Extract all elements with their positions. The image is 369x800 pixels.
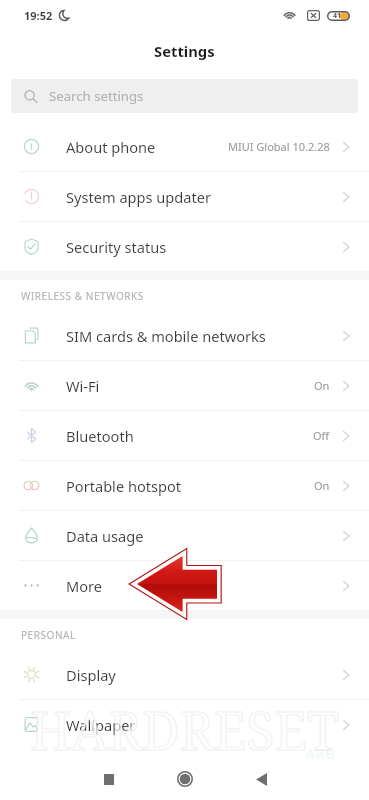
button[interactable]: System apps updater — [0, 172, 369, 221]
staticText: More — [66, 576, 341, 596]
button[interactable]: Wi-Fi — [0, 361, 369, 410]
staticText: Search settings — [49, 87, 144, 105]
button[interactable]: Search settings — [11, 79, 358, 113]
staticText: Bluetooth — [66, 426, 313, 446]
staticText: Settings — [154, 41, 215, 61]
staticText: Wi-Fi — [66, 376, 314, 396]
staticText: About phone — [66, 137, 228, 157]
staticText: On — [314, 378, 330, 393]
staticText: Off — [313, 428, 330, 443]
button[interactable]: Display — [0, 650, 369, 699]
button[interactable]: Back — [243, 754, 279, 800]
button[interactable]: About phone — [0, 122, 369, 171]
staticText: Security status — [66, 237, 341, 257]
button[interactable]: Wallpaper — [0, 700, 369, 749]
staticText: HARDRESET — [30, 694, 339, 752]
button[interactable]: More — [0, 561, 369, 610]
button[interactable]: Home — [167, 754, 203, 800]
staticText: System apps updater — [66, 187, 341, 207]
staticText: Portable hotspot — [66, 476, 314, 496]
staticText: Display — [66, 665, 341, 685]
button[interactable]: Security status — [0, 222, 369, 271]
staticText: MIUI Global 10.2.28 — [228, 139, 330, 154]
staticText: Wallpaper — [66, 715, 341, 735]
button[interactable]: Data usage — [0, 511, 369, 560]
button[interactable]: Recents — [91, 754, 127, 800]
staticText: 41 — [333, 11, 342, 21]
staticText: On — [314, 478, 330, 493]
staticText: 19:52 — [24, 8, 53, 23]
button[interactable]: Bluetooth — [0, 411, 369, 460]
button[interactable]: Portable hotspot — [0, 461, 369, 510]
staticText: WIRELESS & NETWORKS — [21, 289, 144, 303]
staticText: HARDRESET — [30, 694, 339, 752]
staticText: ARB — [305, 743, 336, 763]
staticText: Data usage — [66, 526, 341, 546]
staticText: PERSONAL — [21, 628, 76, 642]
button[interactable]: SIM cards & mobile networks — [0, 311, 369, 360]
staticText: SIM cards & mobile networks — [66, 326, 341, 346]
